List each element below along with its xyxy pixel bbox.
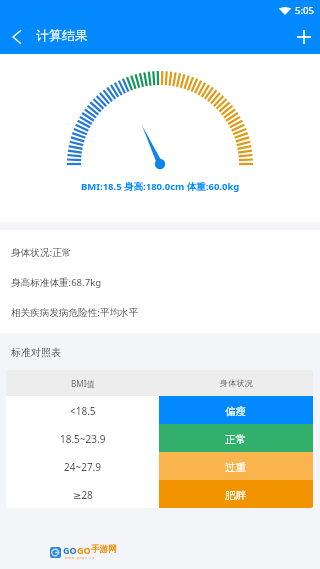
staticText: <18.5 <box>70 404 96 418</box>
staticText: 正常 <box>225 433 247 446</box>
staticText: 5:05 <box>295 4 315 17</box>
staticText: 标准对照表 <box>11 346 61 359</box>
button[interactable]: ≥28 <box>6 480 313 508</box>
staticText: 18.5~23.9 <box>60 432 106 446</box>
staticText: 过重 <box>225 461 247 474</box>
staticText: 身高标准体重:68.7kg <box>11 276 102 289</box>
button[interactable]: Back <box>0 21 33 52</box>
staticText: 身体状况:正常 <box>11 246 72 259</box>
staticText: 肥胖 <box>225 489 247 502</box>
button[interactable]: 24~27.9 <box>6 452 313 480</box>
button[interactable]: 18.5~23.9 <box>6 424 313 452</box>
staticText: 计算结果 <box>36 27 88 43</box>
staticText: w w w . g o g o . c n <box>65 556 94 560</box>
staticText: GO <box>63 544 77 556</box>
staticText: 偏瘦 <box>225 405 247 418</box>
button[interactable]: Add <box>287 21 320 52</box>
staticText: 24~27.9 <box>64 460 101 474</box>
staticText: BMI值 <box>71 378 95 389</box>
staticText: 身体状况 <box>220 378 253 388</box>
staticText: GO <box>77 544 91 556</box>
staticText: 手游网 <box>91 544 117 555</box>
staticText: ≥28 <box>73 488 93 502</box>
staticText: BMI:18.5 身高:180.0cm 体重:60.0kg <box>81 180 240 193</box>
staticText: 相关疾病发病危险性:平均水平 <box>11 306 139 319</box>
button[interactable]: <18.5 <box>6 396 313 424</box>
